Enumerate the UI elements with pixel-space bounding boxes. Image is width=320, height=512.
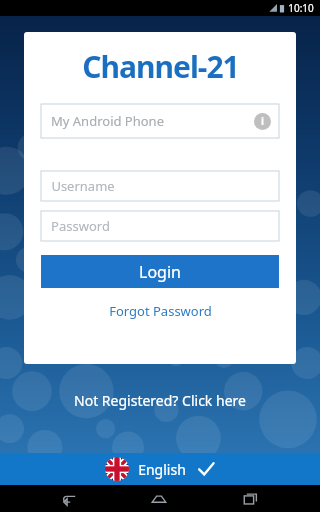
staticText: Not Registered? Click here [74,391,246,410]
staticText: Channel-21 [82,46,239,87]
staticText: Username [51,177,115,195]
button[interactable]: Home [138,485,180,512]
button[interactable]: Not Registered? Click here [64,388,256,413]
staticText: My Android Phone [51,112,164,130]
button[interactable]: Back [48,485,90,512]
staticText: Password [51,217,110,235]
button[interactable]: Username [41,171,279,201]
staticText: English [138,460,186,479]
other: Selected [197,460,215,478]
staticText: Login [139,261,181,283]
staticText: i [261,114,264,128]
button[interactable]: Recents [229,485,271,512]
button[interactable]: Login [41,255,279,288]
staticText: 10:10 [288,1,314,15]
staticText: Forgot Password [109,302,212,320]
other: United Kingdom flag [105,457,129,481]
button[interactable]: My Android Phone [41,104,279,138]
button[interactable]: Forgot Password [101,300,220,322]
button[interactable]: United Kingdom flag [0,453,320,485]
button[interactable]: Password [41,211,279,241]
